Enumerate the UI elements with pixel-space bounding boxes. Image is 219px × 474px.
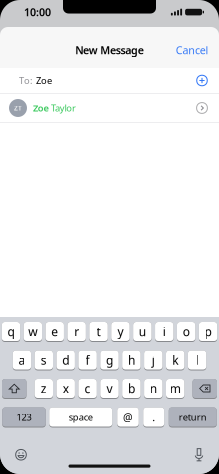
staticText: m — [170, 380, 181, 396]
staticText: @ — [123, 410, 133, 424]
button[interactable]: b — [122, 379, 141, 399]
staticText: v — [106, 380, 112, 396]
staticText: Taylor — [51, 102, 76, 114]
button[interactable]: m — [166, 379, 184, 399]
button[interactable]: e — [45, 322, 64, 342]
staticText: y — [117, 323, 123, 339]
button[interactable]: p — [199, 322, 217, 342]
button[interactable]: Dictate — [193, 448, 205, 461]
button[interactable]: v — [100, 379, 119, 399]
button[interactable]: y — [111, 322, 130, 342]
button[interactable]: w — [24, 322, 42, 342]
staticText: 10:00 — [24, 5, 51, 19]
staticText: t — [96, 323, 100, 339]
button[interactable]: c — [78, 379, 97, 399]
staticText: c — [85, 380, 91, 396]
button[interactable]: j — [144, 350, 162, 370]
button[interactable]: space — [49, 407, 112, 427]
staticText: k — [172, 352, 178, 368]
button[interactable]: Delete — [192, 379, 217, 399]
button[interactable]: t — [89, 322, 108, 342]
button[interactable]: i — [155, 322, 173, 342]
staticText: Cancel — [176, 43, 209, 57]
button[interactable]: k — [166, 350, 184, 370]
staticText: e — [51, 323, 58, 339]
staticText: z — [41, 380, 47, 396]
button[interactable]: r — [67, 322, 86, 342]
staticText: . — [152, 410, 155, 424]
staticText: To: — [19, 74, 33, 87]
staticText: 123 — [16, 411, 31, 423]
staticText: l — [196, 352, 199, 368]
staticText: h — [128, 352, 135, 368]
button[interactable]: q — [2, 322, 20, 342]
button[interactable]: n — [144, 379, 162, 399]
button[interactable]: g — [100, 350, 119, 370]
staticText: s — [41, 352, 47, 368]
staticText: x — [63, 380, 69, 396]
staticText: Zoe — [33, 102, 49, 114]
button[interactable]: d — [56, 350, 75, 370]
staticText: d — [62, 352, 69, 368]
staticText: a — [18, 352, 25, 368]
staticText: i — [163, 323, 166, 339]
button[interactable]: @ — [117, 407, 139, 427]
staticText: New Message — [75, 43, 144, 57]
button[interactable]: Cancel — [176, 43, 209, 57]
staticText: return — [179, 411, 207, 423]
staticText: o — [183, 323, 190, 339]
button[interactable]: a — [13, 350, 31, 370]
staticText: b — [128, 380, 135, 396]
staticText: g — [106, 352, 113, 368]
staticText: ZT — [14, 104, 22, 112]
staticText: q — [7, 323, 14, 339]
button[interactable]: z — [35, 379, 53, 399]
staticText: n — [150, 380, 157, 396]
staticText: u — [139, 323, 146, 339]
button[interactable]: x — [56, 379, 75, 399]
button[interactable]: u — [133, 322, 151, 342]
button[interactable]: h — [122, 350, 141, 370]
staticText: j — [152, 352, 155, 368]
button[interactable]: return — [169, 407, 217, 427]
button[interactable]: f — [78, 350, 97, 370]
staticText: f — [86, 352, 90, 368]
staticText: Zoe — [36, 74, 52, 87]
button[interactable]: Emoji — [15, 449, 27, 461]
button[interactable]: o — [177, 322, 195, 342]
button[interactable]: ZT — [0, 94, 219, 122]
staticText: space — [69, 411, 93, 423]
button[interactable]: . — [143, 407, 164, 427]
staticText: p — [205, 323, 212, 339]
staticText: w — [28, 323, 37, 339]
button[interactable]: Add Contact — [196, 74, 208, 86]
button[interactable]: 123 — [2, 407, 46, 427]
staticText: r — [74, 323, 79, 339]
button[interactable]: Shift — [2, 379, 26, 399]
button[interactable]: s — [35, 350, 53, 370]
button[interactable]: l — [188, 350, 206, 370]
